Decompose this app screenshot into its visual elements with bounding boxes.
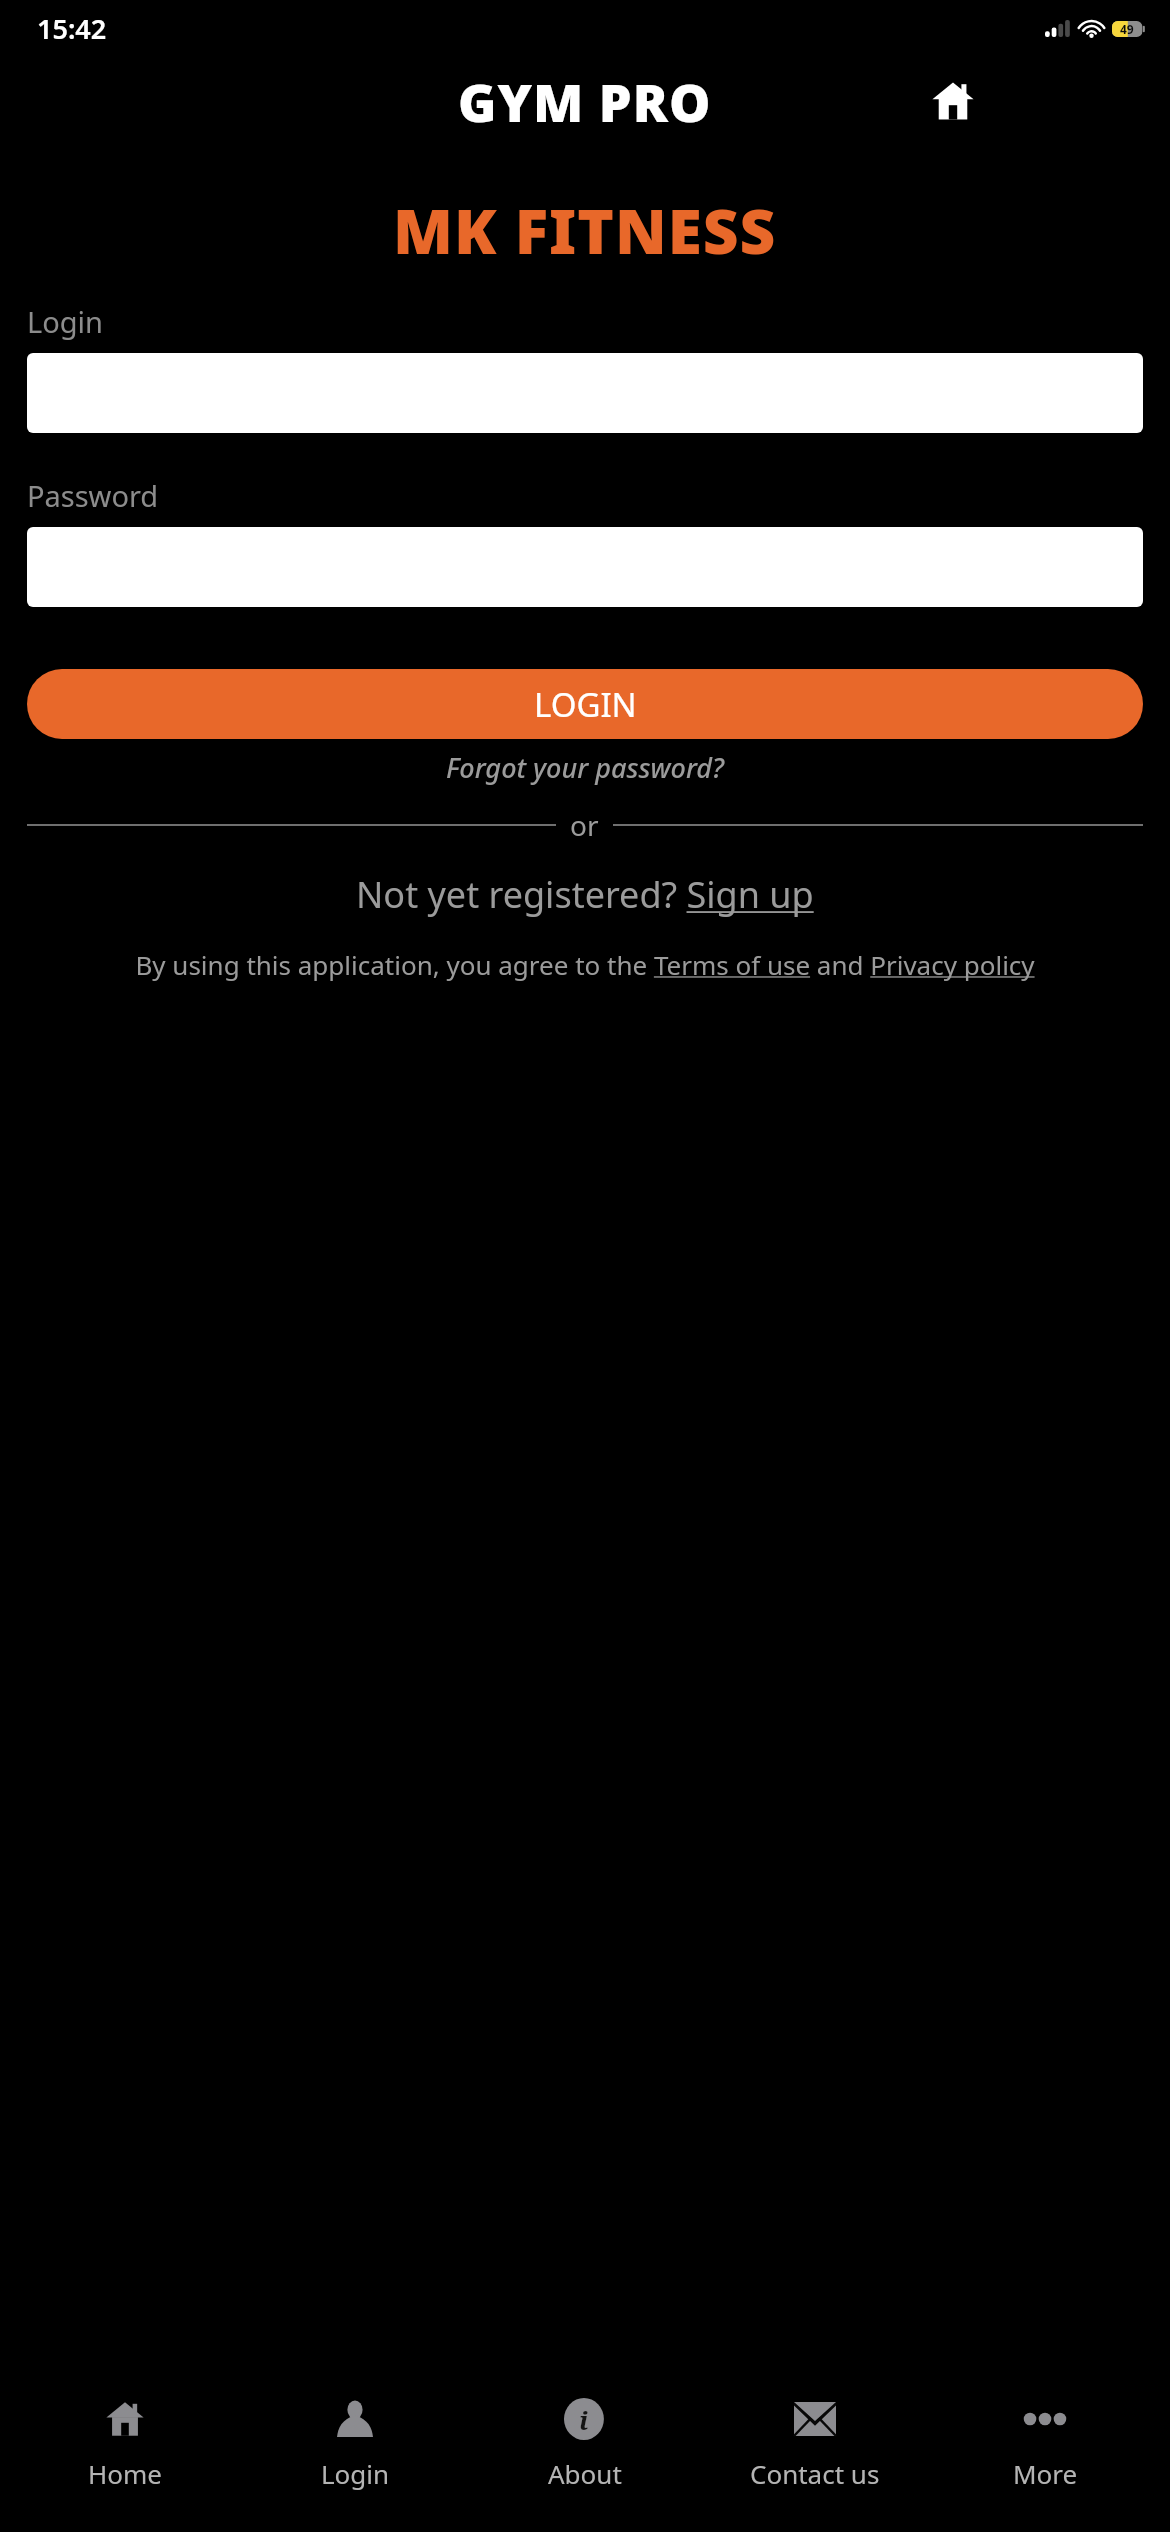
button[interactable]: Password bbox=[27, 527, 1143, 607]
button[interactable]: Home bbox=[926, 74, 980, 128]
staticText: 15:42 bbox=[37, 10, 107, 47]
button[interactable]: Forgot your password? bbox=[446, 749, 724, 786]
button[interactable]: Login bbox=[250, 2378, 460, 2508]
button[interactable]: i bbox=[480, 2378, 690, 2508]
button[interactable]: Contact us bbox=[710, 2378, 920, 2508]
button[interactable]: Login bbox=[27, 353, 1143, 433]
button[interactable]: LOGIN bbox=[27, 669, 1143, 739]
staticText: More bbox=[1013, 2456, 1078, 2491]
button[interactable]: Home bbox=[20, 2378, 230, 2508]
staticText: or bbox=[570, 806, 599, 844]
staticText: Home bbox=[88, 2456, 162, 2491]
staticText: MK FITNESS bbox=[393, 188, 777, 272]
staticText: Login bbox=[27, 302, 103, 341]
button[interactable]: More bbox=[940, 2378, 1150, 2508]
staticText: 49 bbox=[1120, 21, 1134, 37]
button[interactable]: Not yet registered? Sign up bbox=[356, 870, 814, 919]
staticText: Login bbox=[321, 2456, 390, 2491]
button[interactable]: By using this application, you agree to … bbox=[27, 947, 1143, 982]
staticText: Contact us bbox=[750, 2456, 880, 2491]
staticText: i bbox=[579, 2402, 589, 2437]
staticText: Password bbox=[27, 476, 159, 515]
staticText: Not yet registered? Sign up bbox=[356, 870, 814, 919]
staticText: LOGIN bbox=[534, 682, 637, 727]
staticText: GYM PRO bbox=[458, 66, 712, 137]
staticText: About bbox=[548, 2456, 622, 2491]
